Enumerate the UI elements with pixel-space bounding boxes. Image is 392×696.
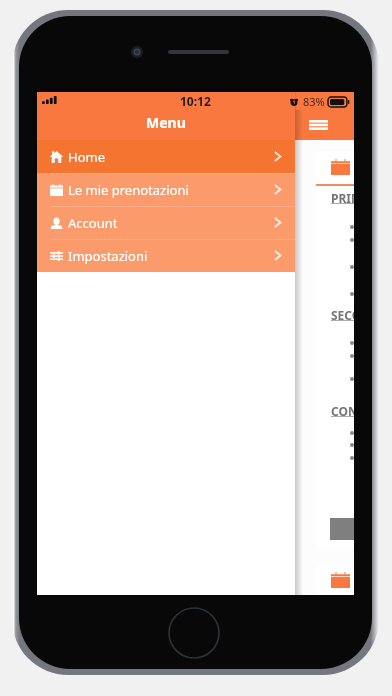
staticText: Le mie prenotazioni xyxy=(68,181,189,199)
staticText: SECONDO GIORNO xyxy=(331,307,354,323)
staticText: Account xyxy=(68,214,118,232)
staticText: Menu xyxy=(146,113,186,132)
button[interactable]: Le mie prenotazioni xyxy=(37,173,295,206)
button[interactable]: PRIMO GIORNO xyxy=(316,151,354,548)
staticText: 10:12 xyxy=(180,93,211,109)
button[interactable]: Open navigation menu xyxy=(303,111,333,139)
staticText: Home xyxy=(68,148,105,166)
staticText: PRIMO GIORNO xyxy=(331,190,354,206)
button[interactable]: PRIMO GIORNO xyxy=(316,564,354,595)
button[interactable]: Account xyxy=(37,206,295,239)
staticText: CONCLUSIONE xyxy=(331,403,354,419)
button[interactable]: Impostazioni xyxy=(37,239,295,272)
staticText: 83% xyxy=(303,94,325,109)
button[interactable]: Home xyxy=(37,140,295,173)
staticText: Impostazioni xyxy=(68,247,148,265)
